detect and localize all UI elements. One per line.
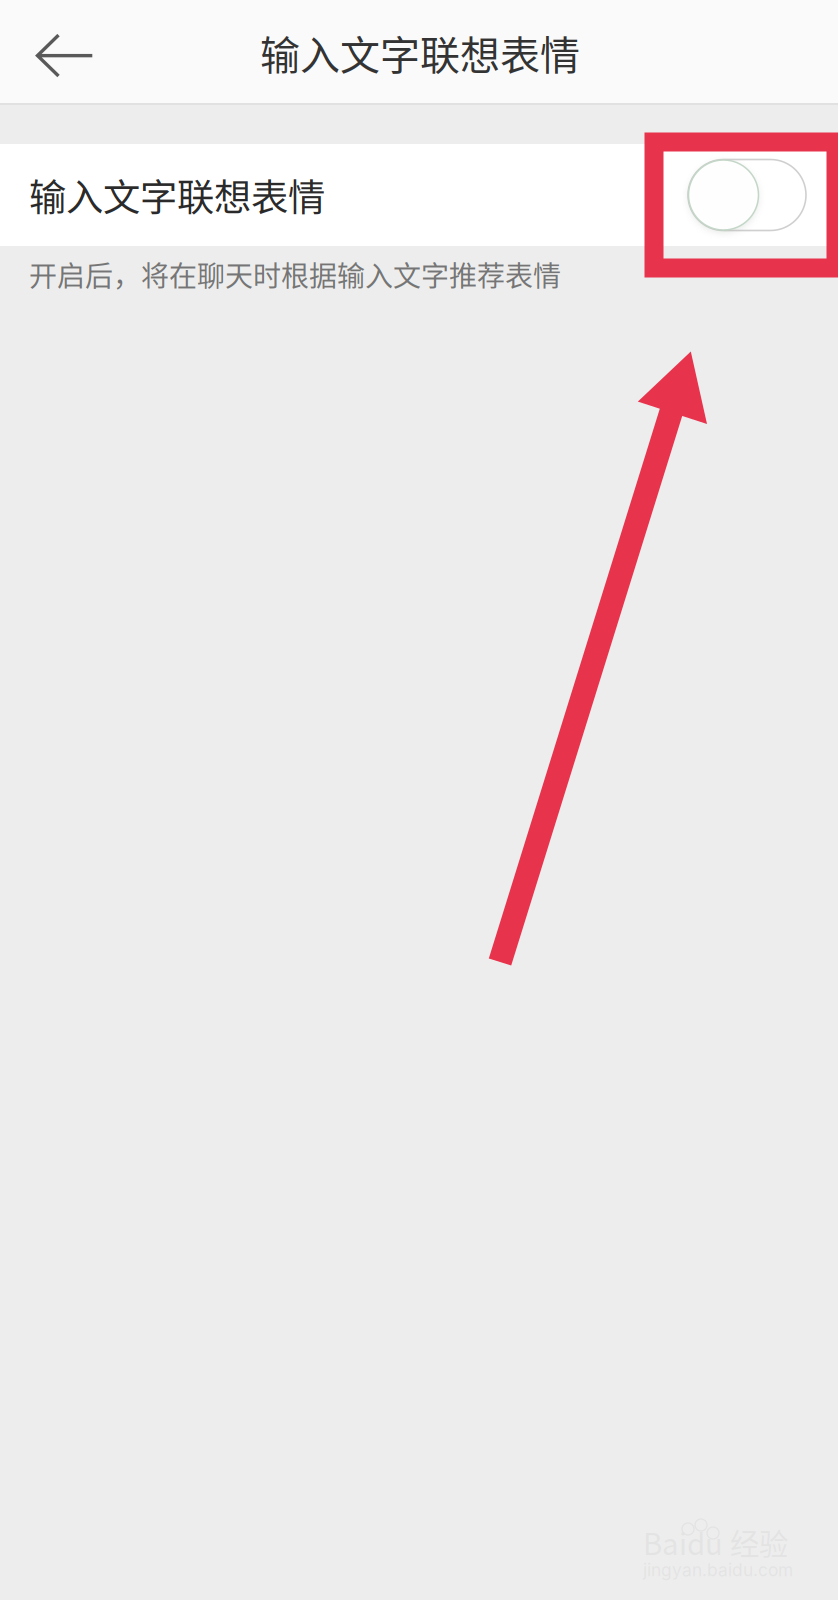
staticText: 输入文字联想表情 (29, 168, 325, 222)
staticText: jingyan.baidu.com (643, 1559, 793, 1580)
button[interactable]: 返回 (0, 0, 112, 104)
staticText: Baidu 经验 (643, 1521, 788, 1563)
button[interactable]: 关 (688, 159, 806, 230)
staticText: 输入文字联想表情 (260, 23, 580, 81)
button[interactable]: 输入文字联想表情 (0, 144, 838, 246)
staticText: 开启后，将在聊天时根据输入文字推荐表情 (29, 254, 561, 294)
